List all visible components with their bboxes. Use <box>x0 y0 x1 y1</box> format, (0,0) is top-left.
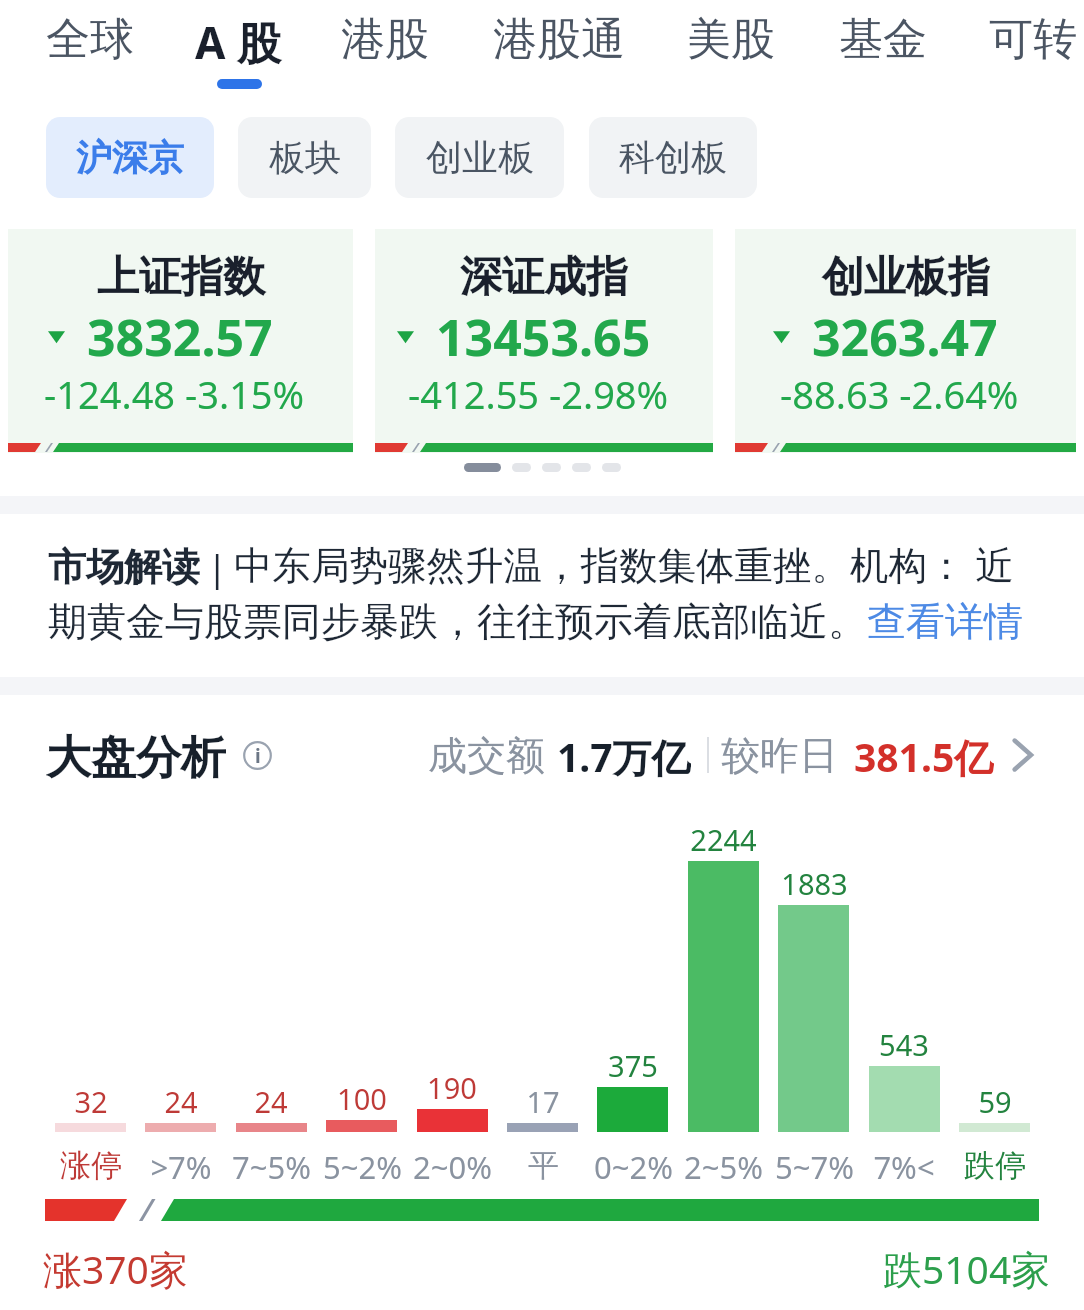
button[interactable]: 可转 <box>977 0 1084 100</box>
staticText: 创业板 <box>426 135 534 180</box>
button[interactable]: 深证成指 <box>375 229 713 453</box>
button[interactable]: 港股 <box>329 0 441 100</box>
other: More <box>1013 736 1033 774</box>
staticText: 科创板 <box>619 135 727 180</box>
staticText: 543 <box>879 1025 929 1064</box>
staticText: 跌停 <box>964 1146 1026 1185</box>
staticText: 100 <box>337 1079 387 1118</box>
button[interactable]: 科创板 <box>589 117 757 198</box>
button[interactable]: A 股 <box>183 0 293 100</box>
button[interactable]: 查看详情 <box>867 597 1023 646</box>
staticText: 可转 <box>989 12 1077 67</box>
staticText: 2~5% <box>684 1146 763 1188</box>
button[interactable]: 成交额 <box>428 730 1033 780</box>
staticText: 32 <box>74 1082 108 1121</box>
staticText: 平 <box>528 1146 559 1185</box>
staticText: i <box>255 743 261 769</box>
staticText: 美股 <box>687 12 775 67</box>
staticText: 港股通 <box>493 12 625 67</box>
button[interactable]: 沪深京 <box>46 117 214 198</box>
staticText: 基金 <box>839 12 927 67</box>
staticText: 成交额 <box>428 731 545 780</box>
button[interactable]: 上证指数 <box>8 229 353 453</box>
staticText: 涨370家 <box>43 1242 188 1295</box>
staticText: 大盘分析 <box>46 730 226 780</box>
staticText: 190 <box>427 1068 477 1107</box>
staticText: 3832.57 <box>87 303 273 371</box>
staticText: 24 <box>164 1082 198 1121</box>
staticText: 7~5% <box>232 1146 311 1188</box>
staticText: 381.5亿 <box>854 730 994 780</box>
staticText: -124.48 -3.15% <box>44 368 305 420</box>
button[interactable]: 市场解读 <box>48 538 1038 668</box>
staticText: 沪深京 <box>76 135 184 180</box>
staticText: 跌5104家 <box>883 1242 1051 1295</box>
staticText: 7%< <box>873 1146 935 1188</box>
staticText: 期黄金与股票同步暴跌，往往预示着底部临近。 <box>48 597 867 646</box>
button[interactable]: 大盘分析 <box>46 730 272 780</box>
staticText: -88.63 -2.64% <box>780 368 1019 420</box>
staticText: 港股 <box>341 12 429 67</box>
staticText: 24 <box>254 1082 288 1121</box>
staticText: 深证成指 <box>460 251 628 304</box>
staticText: 查看详情 <box>867 597 1023 646</box>
staticText: 3263.47 <box>812 303 998 371</box>
staticText: 1883 <box>781 864 848 903</box>
button[interactable]: 美股 <box>675 0 787 100</box>
button[interactable]: 基金 <box>827 0 939 100</box>
staticText: -412.55 -2.98% <box>408 368 669 420</box>
staticText: 59 <box>978 1082 1012 1121</box>
staticText: 市场解读 <box>48 543 200 591</box>
staticText: 5~2% <box>323 1146 402 1188</box>
button[interactable]: 跌5104家 <box>883 1242 1051 1295</box>
staticText: 中东局势骤然升温，指数集体重挫。机构： 近 <box>234 538 1015 591</box>
staticText: 涨停 <box>60 1146 122 1185</box>
other: Info <box>243 741 272 770</box>
button[interactable]: 港股通 <box>481 0 637 100</box>
staticText: | <box>207 541 228 591</box>
button[interactable]: 创业板指 <box>735 229 1076 453</box>
button[interactable]: 涨370家 <box>43 1242 188 1295</box>
staticText: 2244 <box>690 820 757 859</box>
staticText: 板块 <box>269 135 341 180</box>
staticText: 0~2% <box>594 1146 673 1188</box>
staticText: 5~7% <box>775 1146 854 1188</box>
staticText: 较昨日 <box>721 731 838 780</box>
button[interactable]: 创业板 <box>395 117 564 198</box>
staticText: >7% <box>150 1146 212 1188</box>
staticText: 375 <box>608 1046 658 1085</box>
staticText: 2~0% <box>413 1146 492 1188</box>
staticText: A 股 <box>195 12 281 72</box>
staticText: 1.7万亿 <box>557 730 691 780</box>
button[interactable]: 全球 <box>34 0 146 100</box>
staticText: 13453.65 <box>436 303 651 371</box>
staticText: 全球 <box>46 12 134 67</box>
staticText: 创业板指 <box>822 251 990 304</box>
staticText: 17 <box>526 1082 560 1121</box>
staticText: 上证指数 <box>97 251 265 304</box>
button[interactable]: 板块 <box>238 117 371 198</box>
